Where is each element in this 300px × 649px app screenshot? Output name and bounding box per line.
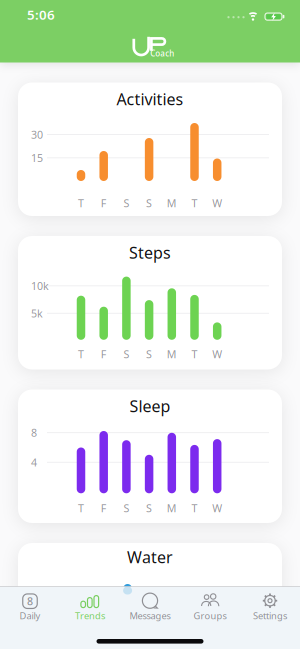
staticText: S: [123, 501, 129, 515]
staticText: Steps: [129, 242, 171, 263]
staticText: Sleep: [129, 395, 170, 417]
staticText: S: [146, 196, 152, 210]
staticText: F: [101, 501, 107, 515]
staticText: T: [191, 501, 197, 515]
staticText: 4: [31, 455, 37, 469]
staticText: Daily: [19, 609, 40, 622]
button[interactable]: Trends: [60, 587, 120, 643]
staticText: 8: [31, 425, 37, 440]
staticText: M: [167, 347, 177, 361]
staticText: W: [212, 347, 222, 361]
staticText: Messages: [129, 609, 170, 622]
button[interactable]: Steps: [18, 236, 282, 369]
staticText: 8: [27, 594, 33, 608]
staticText: 5:06: [27, 6, 55, 23]
staticText: 30: [31, 127, 43, 142]
button[interactable]: Sleep: [18, 389, 282, 523]
staticText: 15: [31, 151, 43, 165]
staticText: Water: [127, 546, 173, 568]
staticText: T: [78, 501, 84, 515]
staticText: M: [167, 501, 177, 515]
staticText: W: [212, 196, 222, 210]
staticText: Activities: [116, 88, 183, 110]
staticText: 5k: [31, 306, 43, 320]
staticText: S: [146, 501, 152, 515]
staticText: 10k: [31, 279, 49, 293]
button[interactable]: Settings: [240, 587, 300, 643]
staticText: Trends: [75, 609, 105, 622]
button[interactable]: Water: [18, 543, 282, 649]
staticText: F: [101, 347, 107, 361]
staticText: S: [123, 347, 129, 361]
button[interactable]: 8: [0, 587, 60, 643]
staticText: Settings: [253, 609, 287, 622]
staticText: Coach: [150, 48, 174, 59]
staticText: T: [78, 196, 84, 210]
staticText: S: [146, 347, 152, 361]
staticText: F: [101, 196, 107, 210]
staticText: S: [123, 196, 129, 210]
staticText: M: [167, 196, 177, 210]
staticText: T: [191, 196, 197, 210]
staticText: Groups: [193, 609, 226, 622]
staticText: W: [212, 501, 222, 515]
staticText: T: [78, 347, 84, 361]
staticText: T: [191, 347, 197, 361]
button[interactable]: Activities: [18, 82, 282, 216]
button[interactable]: Groups: [180, 587, 240, 643]
button[interactable]: Messages: [120, 587, 180, 643]
